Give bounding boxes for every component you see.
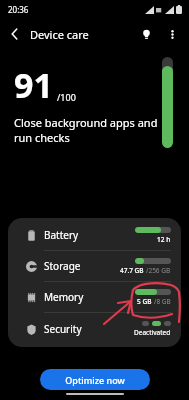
staticText: Device care xyxy=(30,27,89,42)
staticText: Battery xyxy=(44,228,79,242)
button[interactable]: Battery xyxy=(8,220,181,251)
staticText: Deactivated xyxy=(134,328,171,337)
button[interactable]: Tips xyxy=(133,21,159,47)
staticText: Optimize now xyxy=(65,374,125,386)
button[interactable]: More options xyxy=(159,21,185,47)
staticText: 91 xyxy=(14,62,53,108)
staticText: Storage xyxy=(44,259,81,273)
staticText: 47.7 GB xyxy=(120,266,146,275)
button[interactable]: Storage xyxy=(8,251,181,282)
staticText: Close background apps and run checks xyxy=(14,115,158,145)
staticText: 20:36 xyxy=(8,4,29,15)
button[interactable]: Memory xyxy=(8,282,181,313)
staticText: /256 GB xyxy=(146,266,171,275)
staticText: 5 GB xyxy=(137,297,154,306)
staticText: /100 xyxy=(57,91,76,103)
staticText: /8 GB xyxy=(154,297,171,306)
button[interactable]: Security xyxy=(8,313,181,345)
staticText: 12 h xyxy=(157,235,171,244)
button[interactable]: Optimize now xyxy=(40,369,150,390)
staticText: Security xyxy=(44,322,82,336)
button[interactable]: Back xyxy=(0,19,30,49)
staticText: Memory xyxy=(44,290,84,304)
